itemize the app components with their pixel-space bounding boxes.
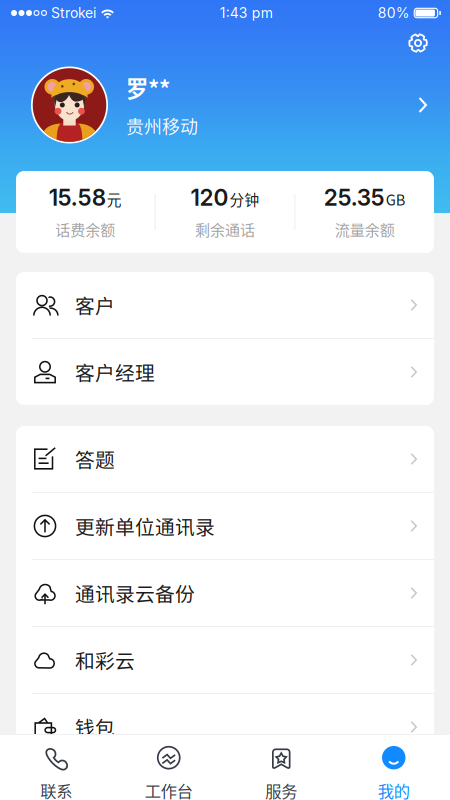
staticText: 钱包 <box>75 713 115 741</box>
staticText: 1:43 pm <box>220 4 273 21</box>
button[interactable]: 罗** <box>0 60 450 150</box>
button[interactable]: 客户经理 <box>16 339 434 405</box>
staticText: 话费余额 <box>55 218 115 240</box>
button[interactable]: 客户 <box>16 272 434 339</box>
staticText: 服务 <box>265 779 297 800</box>
button[interactable]: Settings <box>400 28 436 58</box>
button[interactable]: 和彩云 <box>16 627 434 694</box>
staticText: 答题 <box>75 445 115 473</box>
button[interactable]: 通讯录云备份 <box>16 560 434 627</box>
button[interactable]: 服务 <box>225 735 337 800</box>
staticText: GB <box>386 189 406 210</box>
staticText: 我的 <box>378 779 410 800</box>
button[interactable]: 答题 <box>16 426 434 493</box>
staticText: 80% <box>378 4 410 21</box>
button[interactable]: 更新单位通讯录 <box>16 493 434 560</box>
staticText: 流量余额 <box>335 218 395 240</box>
button[interactable]: 钱包 <box>16 694 434 760</box>
staticText: 贵州移动 <box>126 113 198 139</box>
staticText: 25.35 <box>324 184 385 211</box>
staticText: 通讯录云备份 <box>75 579 195 607</box>
staticText: 剩余通话 <box>195 218 255 240</box>
staticText: 15.58 <box>49 184 106 211</box>
staticText: 罗** <box>126 71 170 104</box>
staticText: 和彩云 <box>75 646 135 674</box>
staticText: 联系 <box>40 779 72 800</box>
staticText: 客户经理 <box>75 358 155 386</box>
staticText: 更新单位通讯录 <box>75 512 215 540</box>
staticText: 分钟 <box>229 189 259 210</box>
staticText: Strokei <box>51 4 96 21</box>
button[interactable]: 工作台 <box>112 735 225 800</box>
button[interactable]: 我的 <box>337 735 450 800</box>
staticText: 工作台 <box>145 779 193 800</box>
staticText: 120 <box>190 184 228 211</box>
button[interactable]: 联系 <box>0 735 112 800</box>
staticText: 元 <box>107 189 122 210</box>
staticText: 客户 <box>75 291 115 319</box>
